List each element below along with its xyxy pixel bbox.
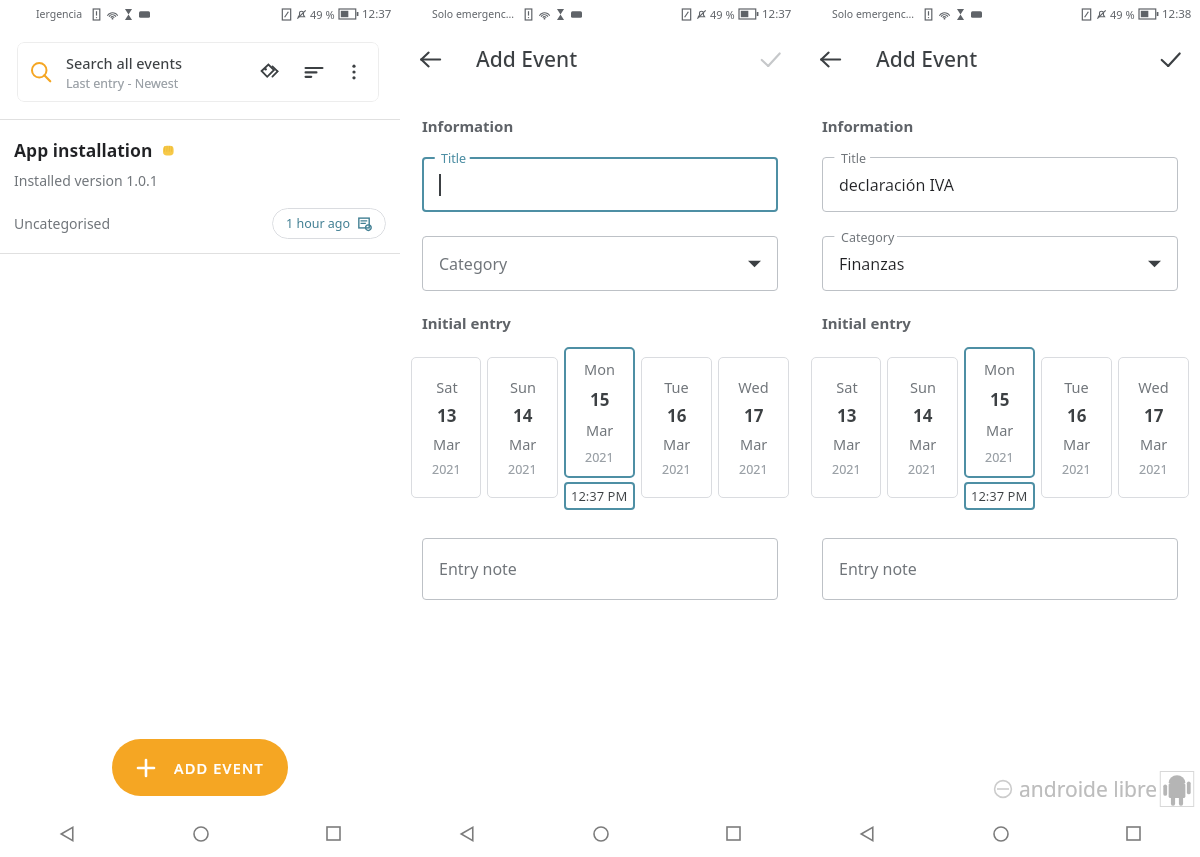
- staticText: Tue: [664, 377, 689, 397]
- button[interactable]: Tue: [641, 357, 712, 498]
- staticText: 12:37 PM: [971, 487, 1028, 505]
- button[interactable]: Back: [800, 810, 934, 857]
- button[interactable]: Home: [934, 810, 1067, 857]
- staticText: Information: [822, 116, 914, 136]
- button[interactable]: Recents: [1067, 810, 1200, 857]
- button[interactable]: Sun: [887, 357, 958, 498]
- staticText: 13: [837, 404, 857, 427]
- button[interactable]: Sun: [487, 357, 558, 498]
- button[interactable]: Sat: [811, 357, 881, 498]
- button[interactable]: ADD EVENT: [112, 739, 288, 796]
- staticText: Mar: [586, 420, 614, 440]
- button[interactable]: 12:37 PM: [964, 482, 1035, 510]
- staticText: ADD EVENT: [174, 758, 264, 778]
- button[interactable]: Sat: [411, 357, 481, 498]
- staticText: Wed: [1138, 377, 1169, 397]
- staticText: 49 %: [710, 7, 735, 22]
- button[interactable]: Finanzas: [822, 236, 1178, 291]
- staticText: 13: [437, 404, 457, 427]
- staticText: 2021: [832, 461, 861, 478]
- button[interactable]: Recents: [667, 810, 800, 857]
- button[interactable]: Back: [408, 37, 452, 81]
- staticText: Add Event: [876, 45, 978, 74]
- button[interactable]: Back: [400, 810, 534, 857]
- staticText: Search all events: [66, 53, 182, 73]
- staticText: Category: [841, 229, 895, 246]
- staticText: Solo emergenc...: [432, 7, 515, 21]
- staticText: Entry note: [839, 558, 917, 580]
- staticText: 2021: [1139, 461, 1168, 478]
- staticText: Uncategorised: [14, 214, 111, 233]
- button[interactable]: More options: [339, 57, 369, 87]
- staticText: Initial entry: [422, 313, 511, 333]
- staticText: 12:37: [762, 6, 792, 22]
- button[interactable]: Sort: [299, 57, 329, 87]
- button[interactable]: Save: [1148, 37, 1192, 81]
- staticText: 17: [1144, 404, 1164, 427]
- staticText: 2021: [508, 461, 537, 478]
- staticText: Category: [439, 253, 508, 275]
- staticText: Sat: [436, 377, 458, 397]
- staticText: Title: [441, 150, 466, 167]
- staticText: 49 %: [310, 7, 335, 22]
- button[interactable]: Tags: [255, 57, 285, 87]
- staticText: Mar: [833, 434, 861, 454]
- button[interactable]: Entry note: [422, 538, 778, 600]
- staticText: declaración IVA: [839, 174, 955, 196]
- button[interactable]: Wed: [1118, 357, 1189, 498]
- staticText: App installation: [14, 138, 153, 162]
- button[interactable]: Search all events: [17, 42, 379, 102]
- staticText: 12:37 PM: [571, 487, 628, 505]
- staticText: Installed version 1.0.1: [14, 171, 158, 190]
- staticText: Solo emergenc...: [832, 7, 915, 21]
- button[interactable]: Recents: [267, 810, 400, 857]
- staticText: Title: [841, 150, 866, 167]
- staticText: 14: [513, 404, 533, 427]
- staticText: Information: [422, 116, 514, 136]
- button[interactable]: App installation: [0, 120, 400, 253]
- button[interactable]: Wed: [718, 357, 789, 498]
- button[interactable]: Entry note: [822, 538, 1178, 600]
- staticText: Sat: [836, 377, 858, 397]
- button[interactable]: Category: [422, 236, 778, 291]
- staticText: 17: [744, 404, 764, 427]
- button[interactable]: [422, 157, 778, 212]
- staticText: 2021: [585, 449, 614, 466]
- staticText: Entry note: [439, 558, 517, 580]
- button[interactable]: Home: [534, 810, 667, 857]
- staticText: 14: [913, 404, 933, 427]
- staticText: 2021: [1062, 461, 1091, 478]
- staticText: Mon: [584, 359, 615, 379]
- staticText: Iergencia: [36, 7, 83, 21]
- staticText: 15: [990, 388, 1010, 411]
- staticText: 2021: [432, 461, 461, 478]
- staticText: 12:37: [362, 6, 392, 22]
- button[interactable]: 12:37 PM: [564, 482, 635, 510]
- staticText: 16: [667, 404, 687, 427]
- staticText: 1 hour ago: [286, 215, 351, 232]
- button[interactable]: Save: [748, 37, 792, 81]
- button[interactable]: Mon: [964, 347, 1035, 478]
- button[interactable]: Home: [134, 810, 267, 857]
- button[interactable]: Mon: [564, 347, 635, 478]
- staticText: Mar: [740, 434, 768, 454]
- staticText: 2021: [985, 449, 1014, 466]
- staticText: Initial entry: [822, 313, 911, 333]
- button[interactable]: 1 hour ago: [272, 208, 386, 239]
- staticText: Tue: [1064, 377, 1089, 397]
- staticText: Mar: [433, 434, 461, 454]
- staticText: Last entry - Newest: [66, 75, 179, 92]
- button[interactable]: declaración IVA: [822, 157, 1178, 212]
- staticText: 2021: [739, 461, 768, 478]
- staticText: 2021: [662, 461, 691, 478]
- staticText: 2021: [908, 461, 937, 478]
- staticText: Mar: [909, 434, 937, 454]
- staticText: Mon: [984, 359, 1015, 379]
- button[interactable]: Back: [808, 37, 852, 81]
- button[interactable]: Tue: [1041, 357, 1112, 498]
- staticText: Sun: [510, 377, 536, 397]
- staticText: Add Event: [476, 45, 578, 74]
- staticText: Mar: [509, 434, 537, 454]
- button[interactable]: Back: [0, 810, 134, 857]
- staticText: Wed: [738, 377, 769, 397]
